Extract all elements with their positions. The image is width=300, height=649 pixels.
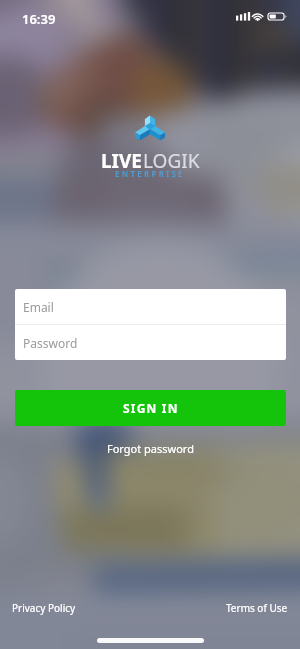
button[interactable]: Forgot password <box>99 438 202 459</box>
staticText: Terms of Use <box>226 601 288 615</box>
staticText: ENTERPRISE <box>115 168 185 179</box>
button[interactable]: SIGN IN <box>15 390 286 426</box>
staticText: Forgot password <box>107 441 194 456</box>
button[interactable]: Email <box>15 289 286 324</box>
button[interactable]: Privacy Policy <box>12 601 76 615</box>
staticText: Email <box>23 299 54 315</box>
other: Signal, wifi and battery status <box>236 12 290 22</box>
button[interactable]: Terms of Use <box>226 601 288 615</box>
staticText: 16:39 <box>22 10 56 28</box>
staticText: SIGN IN <box>123 400 179 416</box>
staticText: LIVE <box>101 148 143 174</box>
staticText: Password <box>23 335 78 351</box>
staticText: Privacy Policy <box>12 601 76 615</box>
button[interactable]: Password <box>15 325 286 360</box>
staticText: LOGIK <box>143 148 200 174</box>
